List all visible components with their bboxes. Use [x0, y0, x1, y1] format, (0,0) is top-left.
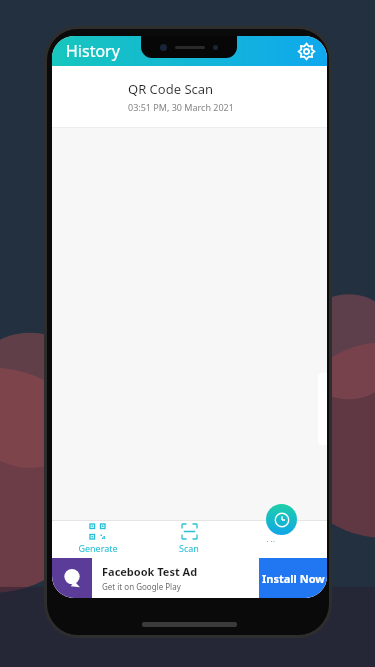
button[interactable]: Scan — [143, 520, 235, 558]
staticText: Install Now — [262, 571, 325, 586]
button[interactable]: Settings — [293, 38, 319, 64]
staticText: History — [266, 538, 297, 542]
staticText: Get it on Google Play — [102, 581, 181, 592]
staticText: Generate — [78, 542, 118, 554]
staticText: History — [66, 40, 120, 62]
button[interactable]: Generate — [52, 520, 143, 558]
button[interactable]: Facebook Test Ad — [52, 558, 327, 598]
button[interactable]: Install Now — [259, 558, 327, 598]
staticText: QR Code Scan — [128, 80, 214, 98]
button[interactable]: History — [266, 504, 297, 542]
button[interactable]: QR Code Scan — [52, 66, 327, 127]
staticText: Scan — [179, 542, 199, 554]
staticText: Facebook Test Ad — [102, 564, 198, 579]
staticText: 03:51 PM, 30 March 2021 — [128, 101, 234, 113]
